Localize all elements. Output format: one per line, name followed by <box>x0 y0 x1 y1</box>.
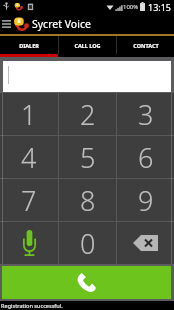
button[interactable]: 1 <box>0 93 58 135</box>
button[interactable]: 6 <box>117 136 174 178</box>
button[interactable]: Call <box>2 266 171 299</box>
staticText: Registration successful. <box>1 302 63 310</box>
button[interactable]: 5 <box>59 136 116 178</box>
staticText: 5 <box>80 139 96 176</box>
button[interactable]: DIALER <box>0 36 58 54</box>
button[interactable]: 2 <box>59 93 116 135</box>
staticText: 8 <box>80 182 96 219</box>
staticText: 7 <box>21 182 37 219</box>
button[interactable]: 4 <box>0 136 58 178</box>
button[interactable]: 8 <box>59 179 116 221</box>
staticText: 2 <box>80 96 96 133</box>
button[interactable]: 7 <box>0 179 58 221</box>
staticText: DIALER <box>19 42 39 49</box>
button[interactable]: Voice input <box>0 222 58 264</box>
staticText: CALL LOG <box>74 42 101 49</box>
staticText: 13:15 <box>148 1 172 13</box>
button[interactable]: 0 <box>59 222 116 264</box>
button[interactable]: 9 <box>117 179 174 221</box>
button[interactable]: Menu <box>0 13 13 34</box>
button[interactable]: CALL LOG <box>59 36 116 54</box>
staticText: 9 <box>138 182 154 219</box>
staticText: 4 <box>21 139 37 176</box>
staticText: 0 <box>80 225 96 262</box>
staticText: CONTACT <box>133 42 159 49</box>
button[interactable]: Backspace <box>117 222 174 264</box>
button[interactable] <box>3 61 171 92</box>
button[interactable]: CONTACT <box>117 36 174 54</box>
staticText: 3 <box>138 96 154 133</box>
staticText: 100% <box>123 3 139 11</box>
staticText: 1 <box>21 96 37 133</box>
button[interactable]: 3 <box>117 93 174 135</box>
staticText: 6 <box>138 139 154 176</box>
staticText: Sycret Voice <box>32 17 91 31</box>
